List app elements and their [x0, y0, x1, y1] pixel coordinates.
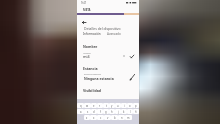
button[interactable]: r [97, 103, 103, 108]
staticText: Estancia [83, 66, 98, 71]
staticText: b [114, 116, 116, 120]
button[interactable]: n [118, 115, 125, 120]
staticText: r [99, 104, 101, 108]
staticText: mi4 [83, 54, 90, 59]
staticText: e [93, 104, 95, 108]
staticText: Nombre [83, 52, 91, 55]
button[interactable]: z [84, 115, 90, 120]
button[interactable]: Editar [127, 72, 137, 82]
staticText: t [106, 104, 107, 108]
button[interactable]: v [104, 115, 111, 120]
button[interactable]: Información [83, 32, 101, 36]
staticText: c [100, 116, 102, 120]
staticText: 9:41 [81, 1, 87, 5]
staticText: Información [83, 32, 101, 36]
button[interactable]: d [91, 109, 97, 114]
button[interactable]: q [77, 103, 84, 108]
staticText: Visibilidad [83, 88, 101, 93]
staticText: f [100, 110, 101, 114]
button[interactable]: a [77, 109, 84, 114]
staticText: h [111, 110, 113, 114]
staticText: Detalles del dispositivo [84, 26, 121, 31]
staticText: Nombre [83, 44, 98, 49]
button[interactable]: o [127, 103, 133, 108]
staticText: m [127, 116, 130, 120]
staticText: s [87, 110, 89, 114]
button[interactable]: k [121, 109, 127, 114]
button[interactable]: w [84, 103, 91, 108]
button[interactable]: s [84, 109, 91, 114]
staticText: p [135, 104, 137, 108]
button[interactable]: Borrar [121, 53, 127, 59]
button[interactable]: c [97, 115, 104, 120]
staticText: Avanzado [107, 32, 121, 36]
button[interactable]: m [125, 115, 132, 120]
staticText: o [129, 104, 131, 108]
button[interactable]: Guardar [128, 52, 136, 60]
staticText: w [86, 104, 89, 108]
button[interactable]: b [111, 115, 118, 120]
staticText: Ninguna estancia [84, 76, 114, 81]
staticText: k [123, 110, 125, 114]
button[interactable]: u [115, 103, 121, 108]
staticText: Estancia asignada [84, 73, 101, 76]
button[interactable]: l [127, 109, 133, 114]
staticText: u [117, 104, 119, 108]
button[interactable]: y [109, 103, 115, 108]
staticText: q [80, 104, 82, 108]
staticText: i [124, 104, 125, 108]
button[interactable]: p [133, 103, 139, 108]
staticText: META [83, 8, 91, 12]
staticText: x [93, 116, 95, 120]
button[interactable]: x [90, 115, 97, 120]
staticText: v [107, 116, 109, 120]
staticText: n [121, 116, 123, 120]
button[interactable]: ñ [133, 109, 139, 114]
staticText: d [93, 110, 95, 114]
staticText: z [86, 116, 88, 120]
button[interactable]: h [109, 109, 115, 114]
staticText: j [118, 110, 119, 114]
button[interactable]: t [103, 103, 109, 108]
button[interactable]: e [91, 103, 97, 108]
staticText: a [80, 110, 82, 114]
staticText: l [130, 110, 131, 114]
button[interactable]: i [121, 103, 127, 108]
staticText: g [105, 110, 107, 114]
button[interactable]: f [97, 109, 103, 114]
button[interactable]: j [115, 109, 121, 114]
button[interactable]: Back [79, 18, 89, 26]
staticText: ñ [135, 110, 137, 114]
button[interactable]: g [103, 109, 109, 114]
staticText: y [111, 104, 113, 108]
button[interactable]: Avanzado [107, 32, 121, 36]
